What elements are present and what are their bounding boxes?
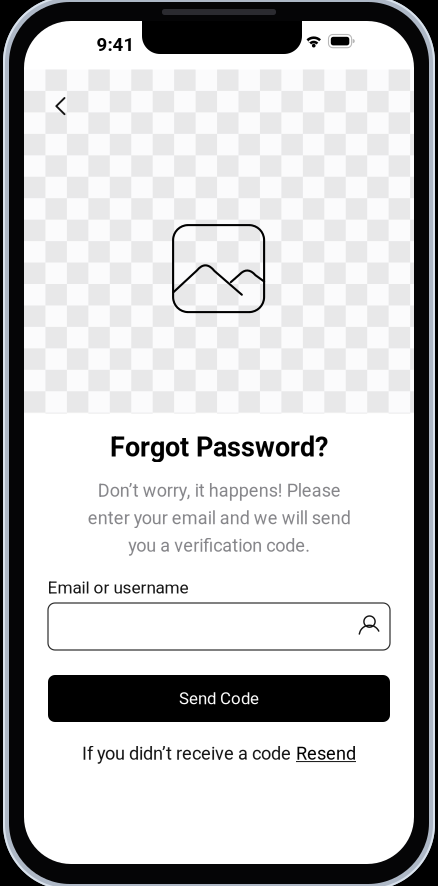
button[interactable]: Resend xyxy=(296,743,356,764)
staticText: Send Code xyxy=(179,689,259,708)
button[interactable]: Back xyxy=(43,89,79,125)
staticText: Resend xyxy=(296,743,356,764)
staticText: Email or username xyxy=(47,577,188,598)
staticText: Don’t worry, it happens! Please enter yo… xyxy=(87,480,350,556)
staticText: Forgot Password? xyxy=(110,431,328,463)
staticText: 9:41 xyxy=(96,34,134,55)
button[interactable]: Send Code xyxy=(48,675,390,722)
staticText: If you didn’t receive a code xyxy=(82,743,291,764)
